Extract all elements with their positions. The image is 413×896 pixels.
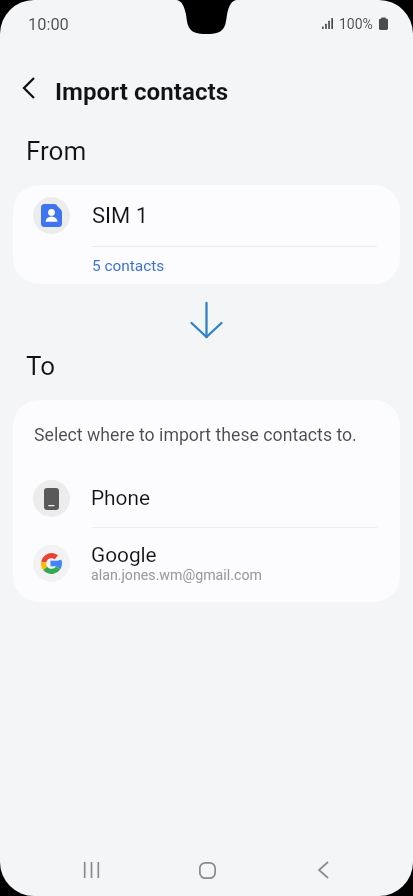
button[interactable]: Recent apps — [51, 848, 131, 892]
button[interactable]: Back — [283, 848, 363, 892]
button[interactable]: SIM 1 — [13, 185, 400, 246]
button[interactable]: Home — [167, 848, 247, 892]
staticText: Phone — [91, 486, 150, 510]
button[interactable]: Phone — [13, 470, 400, 526]
staticText: 100% — [339, 16, 373, 32]
staticText: Import contacts — [55, 78, 229, 106]
staticText: 5 contacts — [92, 257, 165, 275]
staticText: To — [26, 351, 56, 381]
staticText: Google — [91, 543, 157, 567]
button[interactable]: Back — [9, 68, 49, 108]
staticText: SIM 1 — [92, 203, 149, 229]
staticText: Select where to import these contacts to… — [34, 425, 357, 446]
staticText: From — [26, 136, 87, 166]
staticText: alan.jones.wm@gmail.com — [91, 567, 262, 584]
button[interactable]: Google — [13, 535, 400, 591]
staticText: 10:00 — [28, 15, 69, 34]
